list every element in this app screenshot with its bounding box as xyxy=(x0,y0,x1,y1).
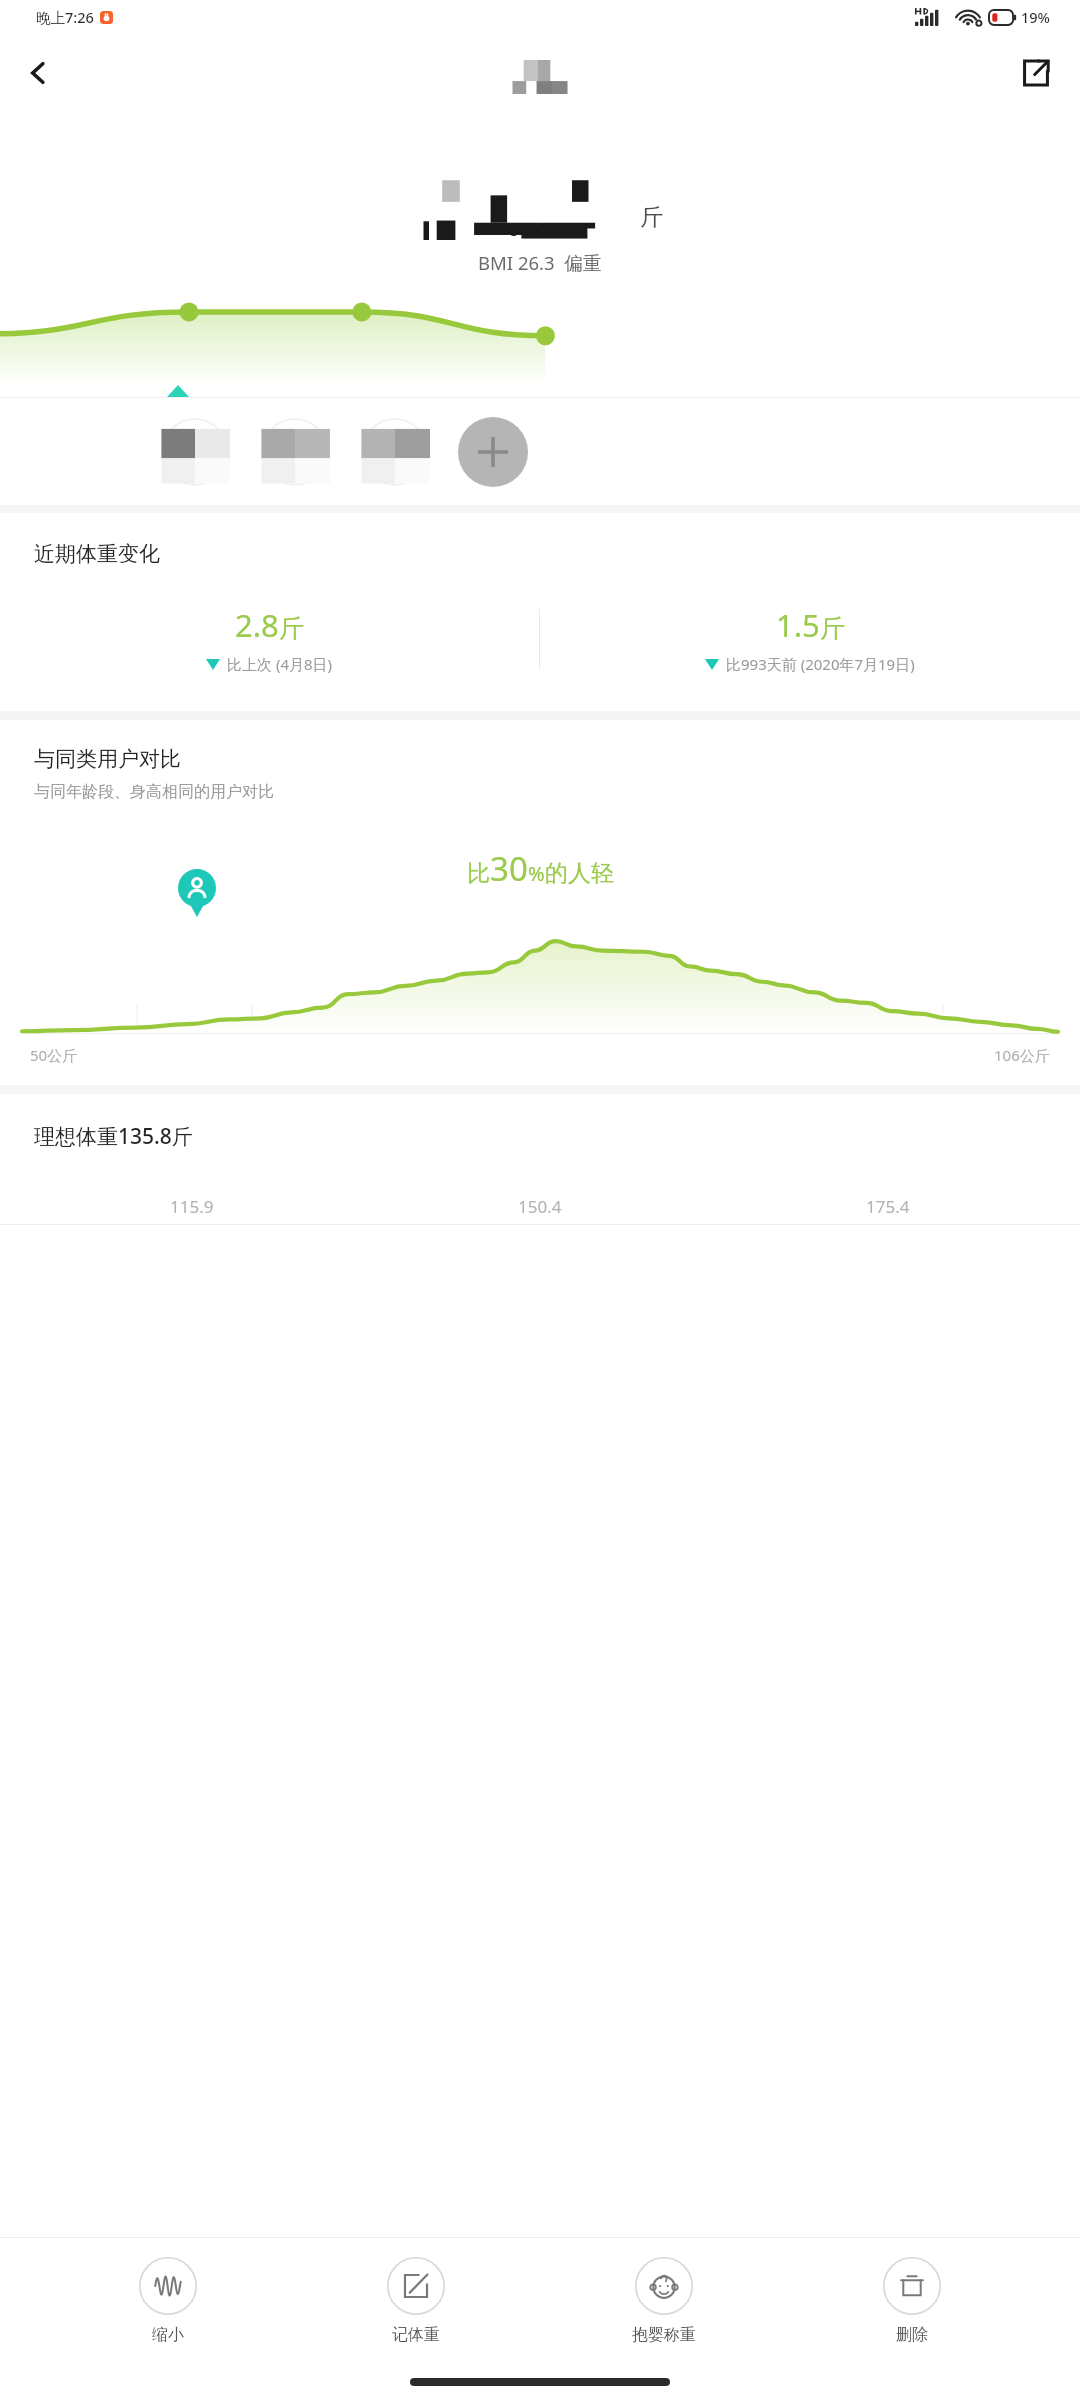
button[interactable]: 记体重 xyxy=(336,2257,496,2345)
staticText: 1.5 xyxy=(776,604,820,646)
button[interactable]: Family member xyxy=(360,417,430,487)
button[interactable]: Family member xyxy=(260,417,330,487)
staticText: 19% xyxy=(1021,7,1050,27)
staticText: 抱婴称重 xyxy=(632,2325,696,2345)
staticText: 斤 xyxy=(279,613,304,644)
staticText: 106公斤 xyxy=(994,1045,1050,1065)
button[interactable]: 2.8 xyxy=(0,593,539,685)
staticText: 2.8 xyxy=(235,604,279,646)
staticText: 与同类用户对比 xyxy=(34,746,181,772)
staticText: 115.9 xyxy=(170,1195,214,1218)
button[interactable]: 1.5 xyxy=(540,593,1080,685)
staticText: 理想体重135.8斤 xyxy=(34,1122,193,1151)
button[interactable]: Family member xyxy=(160,417,230,487)
staticText: 比993天前 (2020年7月19日) xyxy=(726,654,915,674)
staticText: 175.4 xyxy=(866,1195,910,1218)
staticText: 斤 xyxy=(640,203,663,232)
button[interactable]: Back xyxy=(12,47,64,99)
staticText: 缩小 xyxy=(152,2325,184,2345)
staticText: 30 xyxy=(490,846,528,891)
button[interactable]: 删除 xyxy=(832,2257,992,2345)
staticText: BMI 26.3 偏重 xyxy=(478,250,602,275)
staticText: 晚上7:26 xyxy=(36,7,94,27)
staticText: 删除 xyxy=(896,2325,928,2345)
staticText: 的人轻 xyxy=(545,859,614,888)
staticText: 近期体重变化 xyxy=(34,541,160,567)
button[interactable]: 抱婴称重 xyxy=(584,2257,744,2345)
staticText: 50公斤 xyxy=(30,1045,78,1065)
staticText: 与同年龄段、身高相同的用户对比 xyxy=(34,782,274,802)
button[interactable]: 缩小 xyxy=(88,2257,248,2345)
staticText: % xyxy=(528,860,545,887)
button[interactable]: Share xyxy=(1010,47,1062,99)
button[interactable]: Add member xyxy=(458,417,528,487)
staticText: 记体重 xyxy=(392,2325,440,2345)
staticText: 比上次 (4月8日) xyxy=(227,654,333,674)
staticText: 比 xyxy=(467,859,490,888)
staticText: 150.4 xyxy=(518,1195,562,1218)
staticText: 斤 xyxy=(820,613,845,644)
